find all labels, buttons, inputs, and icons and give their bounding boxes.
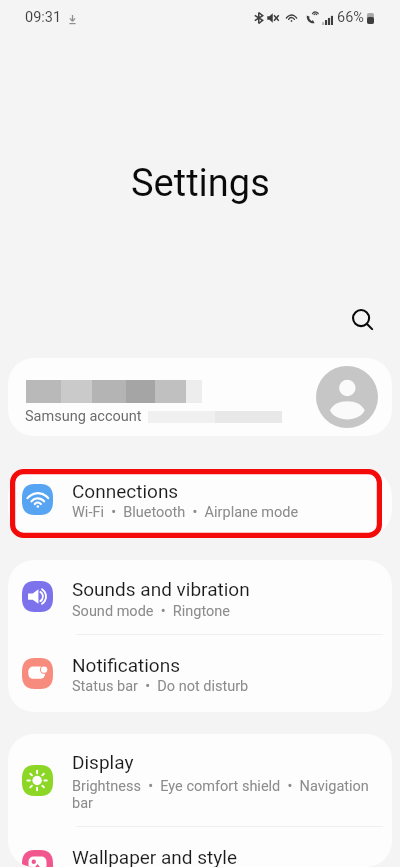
button[interactable]: Sounds and vibration bbox=[8, 560, 392, 634]
button[interactable]: Search bbox=[341, 298, 385, 342]
staticText: Sound mode • Ringtone bbox=[72, 603, 230, 620]
button[interactable]: Samsung account bbox=[8, 358, 392, 436]
staticText: Notifications bbox=[72, 654, 181, 676]
staticText: Sounds and vibration bbox=[72, 578, 250, 600]
staticText: Settings bbox=[131, 161, 270, 206]
staticText: 09:31 bbox=[25, 9, 62, 26]
staticText: Brightness • Eye comfort shield • Naviga… bbox=[72, 778, 372, 812]
staticText: Samsung account bbox=[25, 408, 142, 425]
button[interactable]: Wallpaper and style bbox=[8, 826, 392, 867]
staticText: Status bar • Do not disturb bbox=[72, 678, 249, 695]
staticText: Wallpaper and style bbox=[72, 846, 237, 867]
button[interactable]: Display bbox=[8, 734, 392, 826]
button[interactable]: Connections bbox=[8, 470, 392, 536]
staticText: Display bbox=[72, 751, 134, 773]
staticText: Connections bbox=[72, 480, 179, 502]
staticText: 66% bbox=[337, 9, 364, 26]
staticText: Wi-Fi • Bluetooth • Airplane mode bbox=[72, 504, 299, 521]
button[interactable]: Notifications bbox=[8, 634, 392, 712]
